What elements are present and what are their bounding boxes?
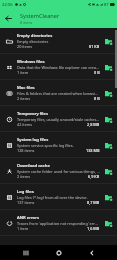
staticText: 0 B [94, 70, 100, 75]
staticText: Temporary files, usually unused/stale ca… [17, 117, 100, 122]
staticText: SystemCleaner [20, 12, 60, 20]
staticText: 6,9 KB [88, 174, 100, 179]
staticText: 22:56 [2, 2, 13, 8]
staticText: Windows files [17, 59, 45, 65]
staticText: 1,6 MB [87, 226, 100, 231]
staticText: 8 B [94, 96, 100, 101]
staticText: Temporary files [17, 111, 48, 117]
staticText: Log files [17, 189, 34, 195]
staticText: 1 item [17, 226, 29, 231]
button[interactable]: Back [0, 10, 17, 27]
staticText: Empty directories [17, 39, 49, 44]
button[interactable]: Delete [102, 61, 115, 74]
staticText: Files & folders that are created when br… [17, 91, 100, 96]
staticText: Data that the Windows file explorer can … [17, 65, 100, 70]
staticText: Download cache [17, 163, 50, 169]
staticText: System service-specific log files. [17, 143, 74, 148]
staticText: 42 items [17, 122, 33, 127]
staticText: 20 items [17, 44, 33, 49]
button[interactable] [0, 158, 117, 184]
staticText: System cache folder used for various thi… [17, 169, 100, 174]
staticText: 133 MB [86, 148, 100, 153]
staticText: 1 item [17, 70, 29, 75]
button[interactable] [0, 80, 117, 106]
staticText: 8 items [20, 20, 33, 25]
staticText: Empty directories [17, 33, 53, 39]
staticText: 2 items [17, 96, 31, 101]
button[interactable] [0, 210, 117, 236]
staticText: 87 [104, 2, 109, 7]
staticText: 137 items [17, 200, 35, 205]
button[interactable] [0, 28, 117, 54]
staticText: Mac files [17, 85, 35, 91]
button[interactable]: Delete [102, 87, 115, 100]
button[interactable]: Delete [102, 217, 115, 230]
staticText: System log files [17, 137, 49, 143]
button[interactable] [0, 184, 117, 210]
button[interactable]: Delete [102, 165, 115, 178]
button[interactable]: Back [84, 245, 99, 260]
button[interactable]: Recent apps [18, 245, 33, 260]
button[interactable]: Delete [102, 35, 115, 48]
staticText: Traces from 'application not responding'… [17, 221, 100, 226]
staticText: Log files (*.log) from all over the devi… [17, 195, 88, 200]
button[interactable]: Delete [102, 191, 115, 204]
staticText: 2 items [17, 174, 31, 179]
button[interactable]: Delete [102, 139, 115, 152]
button[interactable] [0, 106, 117, 132]
button[interactable]: Home [51, 245, 66, 260]
button[interactable]: Delete [102, 113, 115, 126]
staticText: 2,8 MB [87, 122, 100, 127]
staticText: ANR errors [17, 215, 39, 221]
staticText: 128 items [17, 148, 35, 153]
button[interactable] [0, 132, 117, 158]
button[interactable] [0, 54, 117, 80]
staticText: 81 KB [89, 44, 100, 49]
staticText: 8,7 MB [87, 200, 100, 205]
